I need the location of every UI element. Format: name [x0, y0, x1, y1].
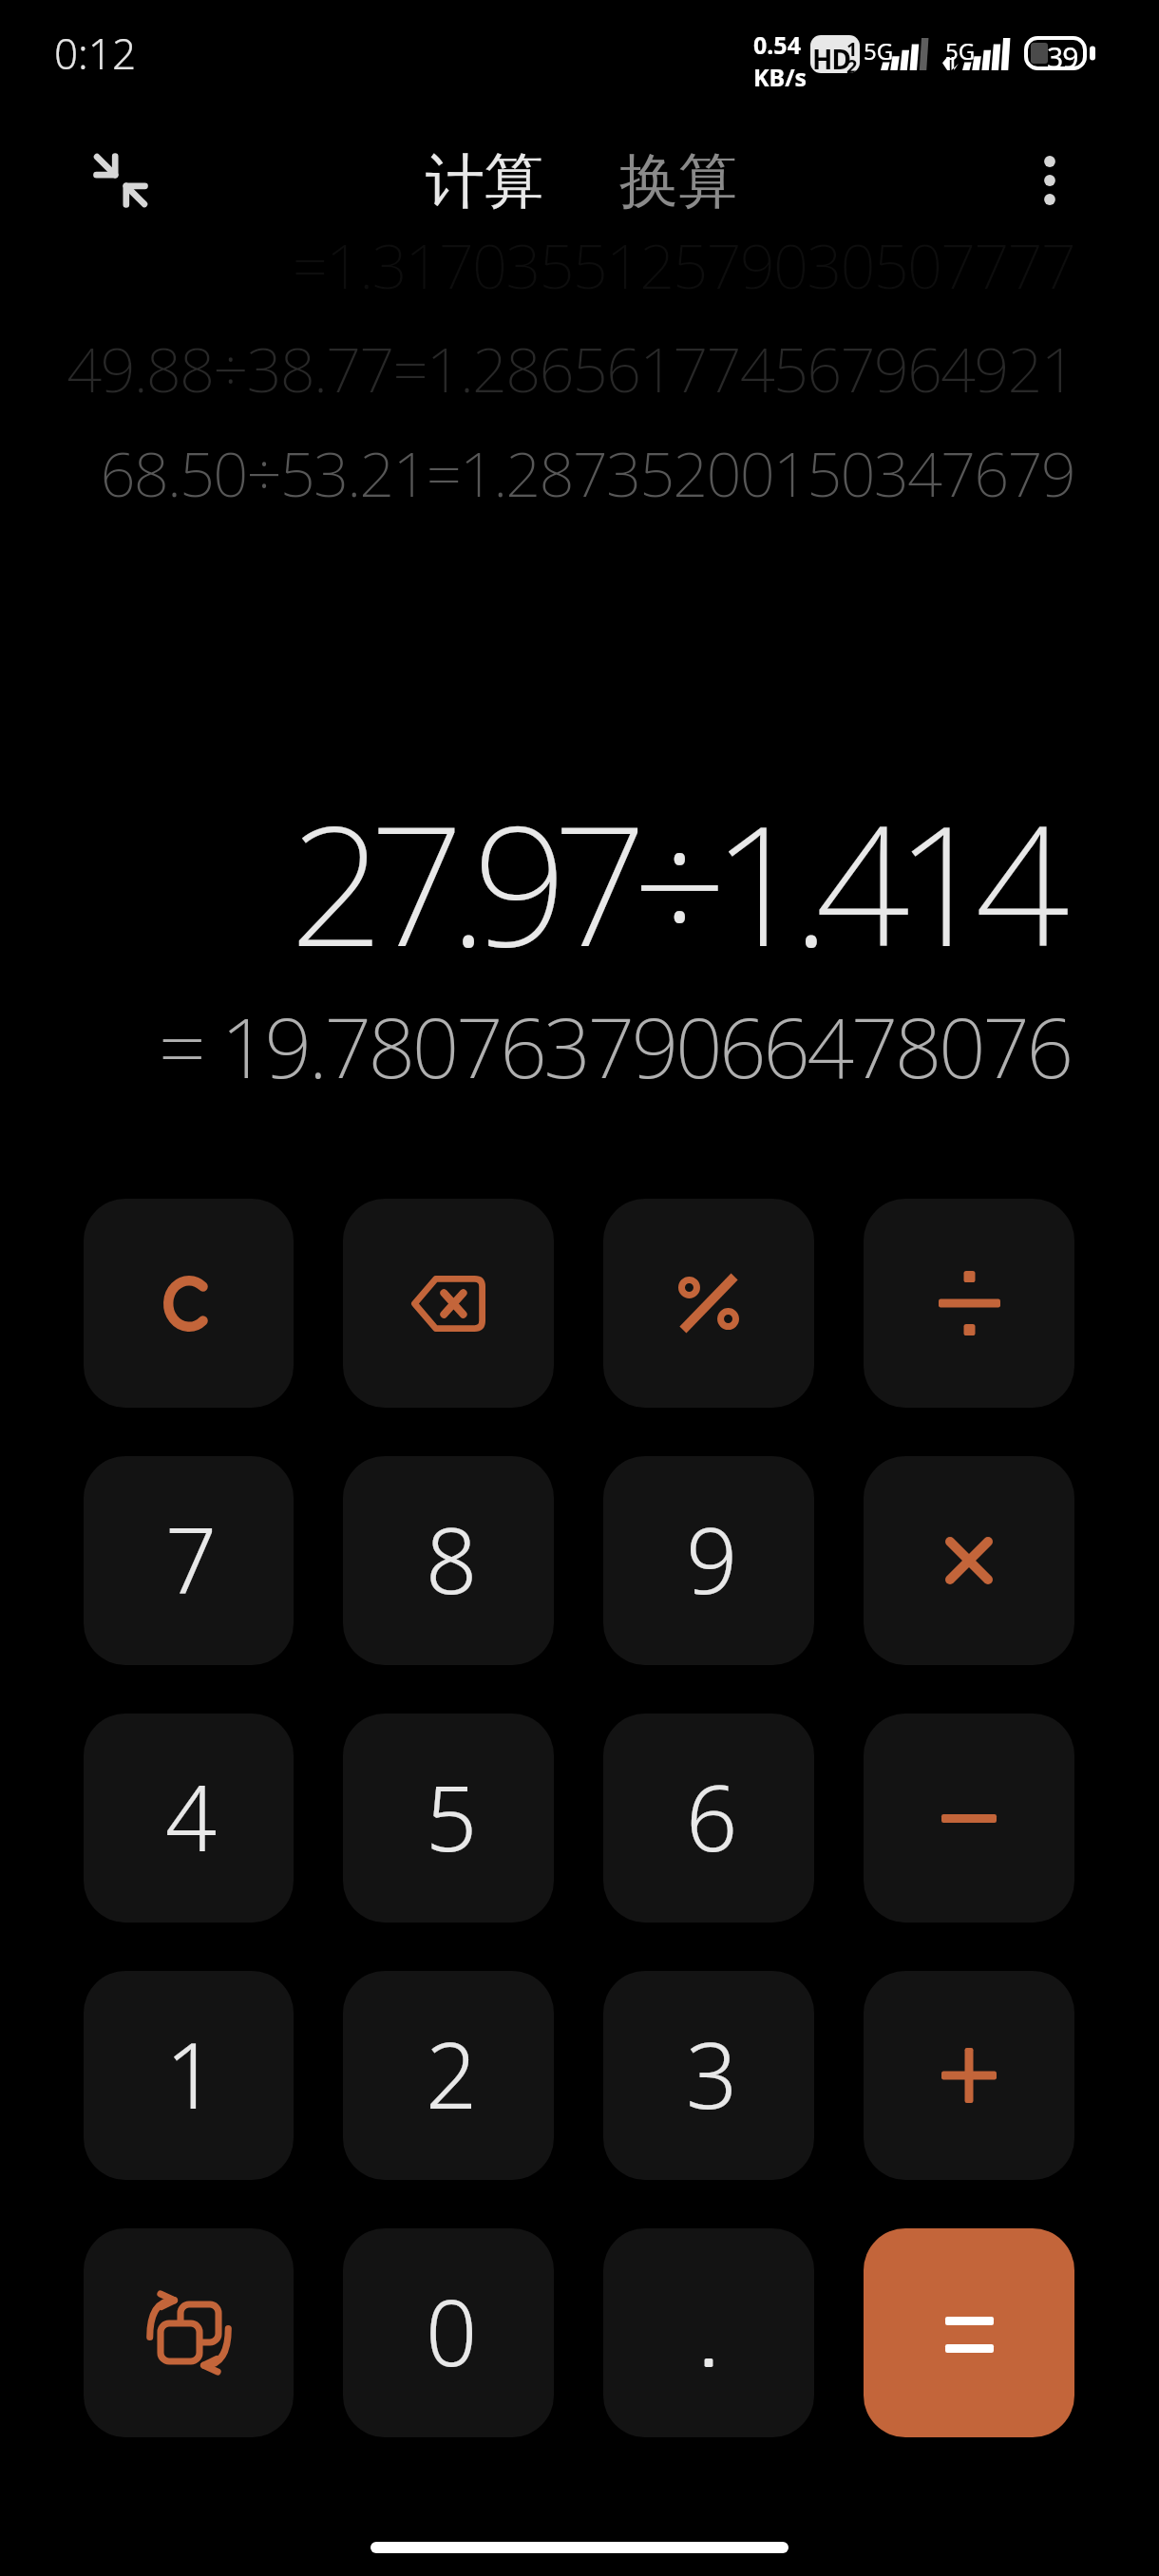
button[interactable]: 2 [343, 1971, 554, 2180]
button[interactable]: 6 [603, 1714, 814, 1923]
staticText: 68.50÷53.21=1.28735200150347679 [100, 431, 1074, 516]
button[interactable]: Delete [343, 1199, 554, 1408]
button[interactable]: Multiply [864, 1456, 1074, 1665]
staticText: 6 [686, 1754, 732, 1877]
button[interactable]: Subtract [864, 1714, 1074, 1923]
staticText: 0:12 [54, 25, 137, 82]
staticText: 5G [945, 35, 976, 66]
button[interactable]: Collapse [68, 137, 173, 224]
button[interactable]: Percent [603, 1199, 814, 1408]
staticText: 39 [1047, 38, 1078, 70]
staticText: 0.54 [753, 28, 801, 61]
button[interactable]: 4 [84, 1714, 294, 1923]
button[interactable]: Divide [864, 1199, 1074, 1408]
staticText: 4 [165, 1754, 212, 1877]
staticText: 0 [426, 2269, 472, 2392]
button[interactable]: 8 [343, 1456, 554, 1665]
staticText: 计算 [426, 144, 543, 213]
staticText: 9 [686, 1497, 732, 1619]
button[interactable]: Unit conversion [84, 2228, 294, 2437]
button[interactable]: 5 [343, 1714, 554, 1923]
staticText: 49.88÷38.77=1.286561774567964921 [66, 327, 1074, 411]
staticText: 8 [426, 1497, 472, 1619]
staticText: 换算 [619, 144, 737, 213]
button[interactable]: More options [997, 137, 1102, 224]
staticText: 1 [165, 2012, 212, 2134]
staticText: 5 [426, 1754, 472, 1877]
staticText: 27.97÷1.414 [290, 769, 1055, 994]
staticText: 2 [846, 53, 858, 73]
staticText: KB/s [753, 61, 807, 93]
button[interactable]: 计算 [418, 135, 551, 222]
button[interactable]: 3 [603, 1971, 814, 2180]
button[interactable]: 1 [84, 1971, 294, 2180]
button[interactable]: Decimal point [603, 2228, 814, 2437]
staticText: 7 [165, 1497, 212, 1619]
button[interactable]: 9 [603, 1456, 814, 1665]
staticText: 2 [426, 2012, 472, 2134]
button[interactable]: 7 [84, 1456, 294, 1665]
staticText: 3 [686, 2012, 732, 2134]
staticText: = 19.78076379066478076 [159, 990, 1071, 1102]
button[interactable]: 0 [343, 2228, 554, 2437]
button[interactable]: Clear [84, 1199, 294, 1408]
staticText: 5G [864, 35, 894, 66]
button[interactable]: Add [864, 1971, 1074, 2180]
button[interactable]: Equals [864, 2228, 1074, 2437]
button[interactable]: 换算 [612, 135, 745, 222]
staticText: HD [812, 41, 850, 73]
staticText: 1 [846, 36, 858, 62]
